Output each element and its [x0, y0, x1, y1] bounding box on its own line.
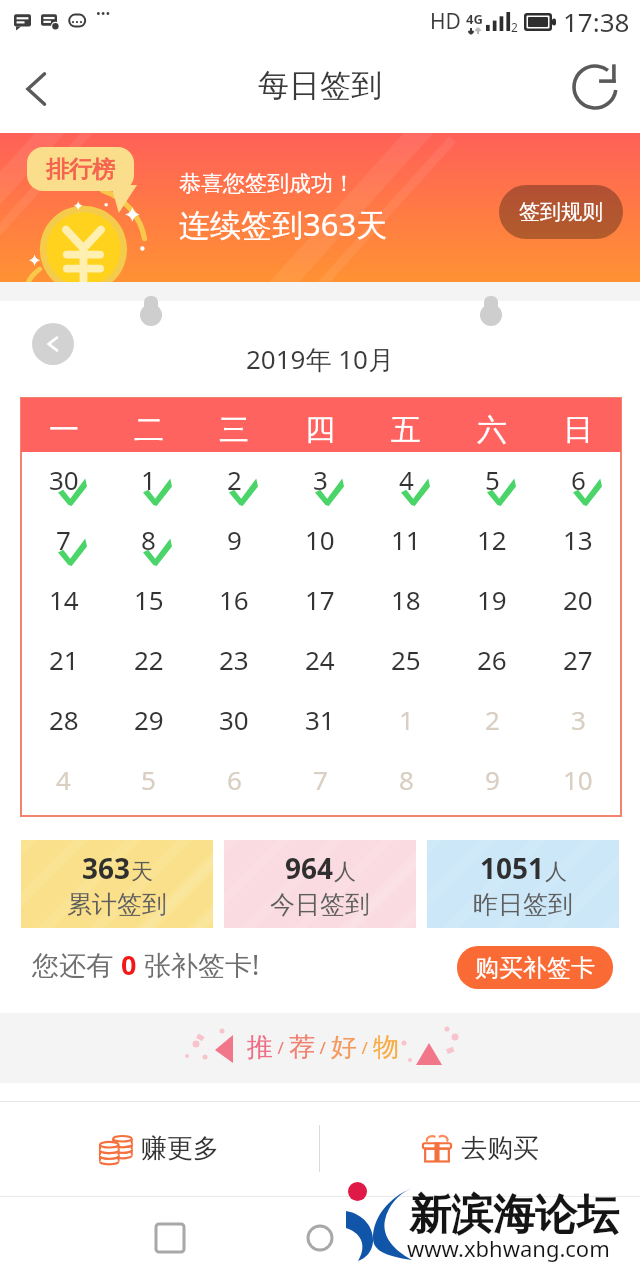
button[interactable]: 8	[363, 752, 449, 812]
button[interactable]: 5	[449, 452, 535, 512]
button[interactable]: Home	[292, 1210, 348, 1266]
button[interactable]: 30	[191, 692, 277, 752]
button[interactable]: 3	[277, 452, 363, 512]
button[interactable]: 1	[363, 692, 449, 752]
staticText: 17	[305, 582, 335, 617]
button[interactable]: 26	[449, 632, 535, 692]
staticText: 28	[49, 702, 79, 737]
staticText: 13	[563, 522, 593, 557]
staticText: 签到规则	[519, 199, 603, 225]
button[interactable]: 13	[535, 512, 621, 572]
staticText: 4	[399, 462, 414, 497]
button[interactable]: Previous month	[32, 323, 74, 365]
button[interactable]: 5	[106, 752, 191, 812]
button[interactable]: 2	[449, 692, 535, 752]
staticText: 2	[511, 19, 518, 35]
button[interactable]: 363	[21, 840, 213, 928]
button[interactable]: 25	[363, 632, 449, 692]
button[interactable]: 9	[449, 752, 535, 812]
button[interactable]: 15	[106, 572, 191, 632]
button[interactable]: 7	[277, 752, 363, 812]
button[interactable]: 排行榜	[27, 147, 134, 191]
staticText: 10	[563, 762, 593, 797]
button[interactable]: 28	[21, 692, 106, 752]
staticText: 连续签到363天	[179, 203, 388, 245]
button[interactable]: 21	[21, 632, 106, 692]
button[interactable]: 17	[277, 572, 363, 632]
button[interactable]: 6	[191, 752, 277, 812]
button[interactable]: 30	[21, 452, 106, 512]
button[interactable]: Recents	[142, 1210, 198, 1266]
staticText: 363	[82, 849, 131, 887]
button[interactable]: 29	[106, 692, 191, 752]
staticText: 19	[477, 582, 507, 617]
button[interactable]: 16	[191, 572, 277, 632]
staticText: /	[315, 1036, 331, 1059]
staticText: 三	[219, 411, 249, 449]
staticText: 964	[285, 849, 334, 887]
button[interactable]: 24	[277, 632, 363, 692]
button[interactable]: 签到规则	[499, 185, 623, 239]
staticText: 二	[134, 411, 164, 449]
staticText: 5	[485, 462, 500, 497]
button[interactable]: 23	[191, 632, 277, 692]
button[interactable]: 4	[21, 752, 106, 812]
button[interactable]: 14	[21, 572, 106, 632]
button[interactable]: 27	[535, 632, 621, 692]
staticText: 张补签卡!	[137, 946, 260, 983]
staticText: 新滨海论坛	[409, 1189, 619, 1242]
staticText: 3	[571, 702, 586, 737]
button[interactable]: 18	[363, 572, 449, 632]
button[interactable]: 4	[363, 452, 449, 512]
staticText: 排行榜	[46, 155, 115, 184]
button[interactable]: 9	[191, 512, 277, 572]
button[interactable]: 购买补签卡	[457, 946, 613, 989]
staticText: 昨日签到	[473, 889, 573, 920]
staticText: 22	[134, 642, 164, 677]
button[interactable]: 7	[21, 512, 106, 572]
button[interactable]: 1051	[427, 840, 619, 928]
staticText: 16	[219, 582, 249, 617]
staticText: 荐	[289, 1031, 315, 1064]
staticText: 五	[391, 411, 421, 449]
button[interactable]: 19	[449, 572, 535, 632]
staticText: 20	[563, 582, 593, 617]
staticText: 8	[399, 762, 414, 797]
button[interactable]: 11	[363, 512, 449, 572]
staticText: 好	[331, 1031, 357, 1064]
staticText: 2	[485, 702, 500, 737]
staticText: 8	[141, 522, 156, 557]
button[interactable]: 2	[191, 452, 277, 512]
button[interactable]: 22	[106, 632, 191, 692]
button[interactable]: 去购买	[320, 1101, 640, 1196]
staticText: www.xbhwang.com	[407, 1233, 610, 1263]
button[interactable]: 1	[106, 452, 191, 512]
staticText: 30	[219, 702, 249, 737]
button[interactable]: Back	[6, 45, 68, 133]
staticText: 6	[571, 462, 586, 497]
button[interactable]: 10	[535, 752, 621, 812]
staticText: 9	[227, 522, 242, 557]
staticText: 恭喜您签到成功！	[179, 170, 355, 198]
staticText: 去购买	[461, 1132, 539, 1165]
staticText: ···	[96, 2, 111, 25]
button[interactable]: 31	[277, 692, 363, 752]
button[interactable]: 6	[535, 452, 621, 512]
button[interactable]: 3	[535, 692, 621, 752]
button[interactable]: 20	[535, 572, 621, 632]
button[interactable]: 964	[224, 840, 416, 928]
staticText: 每日签到	[258, 66, 382, 105]
button[interactable]: Refresh	[570, 45, 640, 133]
button[interactable]: 8	[106, 512, 191, 572]
staticText: 3	[313, 462, 328, 497]
staticText: 5	[141, 762, 156, 797]
button[interactable]: 12	[449, 512, 535, 572]
staticText: 15	[134, 582, 164, 617]
staticText: 7	[313, 762, 328, 797]
staticText: 9	[485, 762, 500, 797]
button[interactable]: 10	[277, 512, 363, 572]
staticText: 物	[373, 1031, 399, 1064]
staticText: 1	[399, 702, 414, 737]
staticText: 人	[334, 858, 356, 886]
button[interactable]: 赚更多	[0, 1101, 319, 1196]
